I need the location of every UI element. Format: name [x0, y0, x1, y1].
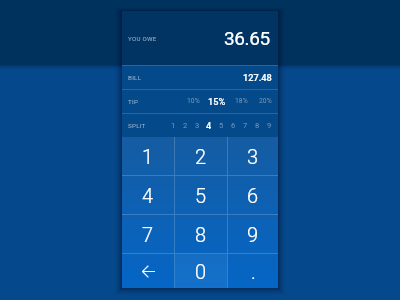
staticText: 9 — [247, 223, 259, 246]
button[interactable]: 6 — [228, 176, 278, 214]
button[interactable]: 9 — [228, 215, 278, 253]
button[interactable]: 1 — [167, 113, 179, 137]
staticText: 3 — [247, 145, 259, 168]
button[interactable]: 15% — [205, 89, 229, 113]
button[interactable]: 3 — [191, 113, 203, 137]
other: Backspace — [140, 263, 157, 280]
staticText: 4 — [142, 184, 154, 207]
button[interactable]: 0 — [175, 254, 227, 288]
staticText: 2 — [195, 145, 207, 168]
staticText: 10% — [187, 97, 200, 105]
button[interactable]: . — [228, 254, 278, 288]
button[interactable]: 5 — [175, 176, 227, 214]
button[interactable]: YOU OWE — [122, 11, 278, 65]
button[interactable]: 2 — [179, 113, 191, 137]
staticText: 1 — [142, 145, 154, 168]
button[interactable]: 20% — [253, 89, 277, 113]
button[interactable]: 4 — [122, 176, 174, 214]
staticText: 3 — [195, 121, 200, 130]
staticText: 5 — [195, 184, 207, 207]
button[interactable]: 7 — [122, 215, 174, 253]
button[interactable]: 8 — [251, 113, 263, 137]
staticText: 5 — [219, 121, 224, 130]
staticText: 7 — [142, 223, 154, 246]
button[interactable]: 7 — [239, 113, 251, 137]
button[interactable]: 4 — [203, 113, 215, 137]
button[interactable]: 9 — [263, 113, 275, 137]
button[interactable]: 2 — [175, 137, 227, 175]
staticText: . — [251, 260, 256, 283]
staticText: 7 — [243, 121, 248, 130]
staticText: 8 — [195, 223, 207, 246]
staticText: TIP — [128, 98, 139, 105]
staticText: 18% — [235, 97, 248, 105]
staticText: 8 — [255, 121, 260, 130]
button[interactable]: 8 — [175, 215, 227, 253]
button[interactable]: 6 — [227, 113, 239, 137]
staticText: YOU OWE — [128, 35, 157, 42]
staticText: BILL — [128, 74, 142, 81]
staticText: 15% — [208, 96, 226, 107]
button[interactable]: 5 — [215, 113, 227, 137]
staticText: 127.48 — [243, 72, 272, 83]
button[interactable]: Backspace — [122, 254, 174, 288]
button[interactable]: 1 — [122, 137, 174, 175]
staticText: 36.65 — [224, 27, 270, 49]
staticText: 2 — [183, 121, 188, 130]
button[interactable]: 18% — [229, 89, 253, 113]
staticText: 6 — [231, 121, 236, 130]
staticText: 20% — [259, 97, 272, 105]
staticText: SPLIT — [128, 122, 146, 129]
staticText: 0 — [195, 260, 207, 283]
staticText: 6 — [247, 184, 259, 207]
button[interactable]: 10% — [181, 89, 205, 113]
staticText: 1 — [171, 121, 176, 130]
staticText: 9 — [267, 121, 272, 130]
button[interactable]: BILL — [122, 65, 278, 89]
button[interactable]: 3 — [228, 137, 278, 175]
staticText: 4 — [206, 120, 212, 131]
